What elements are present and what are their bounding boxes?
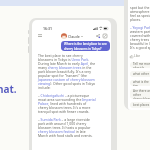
- staticText: hat.: [0, 82, 17, 96]
- staticText: what other cities in: [133, 72, 150, 76]
- button[interactable]: Where is the best place to see cherry bl…: [61, 41, 110, 51]
- staticText: Like: [134, 54, 140, 58]
- button[interactable]: best places to phot: [130, 102, 150, 108]
- staticText: Where is the best place to see cherry bl…: [64, 42, 107, 50]
- button[interactable]: Are there any other cherry blossom fes: [130, 89, 150, 99]
- button[interactable]: what other cities in: [130, 71, 150, 77]
- staticText: spot but the atmosphere doesn't feel as …: [130, 5, 150, 22]
- staticText: what is the best tim: [133, 80, 150, 86]
- staticText: – Chidorigafuchi – a picturesque moat ar…: [38, 93, 96, 114]
- button[interactable]: Claude: [60, 33, 84, 39]
- staticText: Are there any other cherry blossom fes: [133, 89, 150, 99]
- button[interactable]: Tell me more about h: [130, 62, 150, 68]
- staticText: – Sumida Park – a large riverside park w…: [38, 117, 96, 138]
- button[interactable]: what is the best tim: [130, 80, 150, 86]
- staticText: Claude: [68, 34, 80, 39]
- button[interactable]: Like: [130, 53, 140, 59]
- staticText: Tell me more about h: [133, 62, 150, 68]
- staticText: – Yoyogi Park – the western part is cove…: [130, 25, 150, 50]
- button[interactable]: New chat: [101, 32, 108, 39]
- button[interactable]: Share: [94, 32, 101, 39]
- button[interactable]: Menu: [36, 32, 43, 39]
- staticText: 16:31: [43, 26, 52, 31]
- staticText: The best place to see cherry blossoms in…: [38, 53, 96, 90]
- staticText: best places to phot: [133, 103, 150, 107]
